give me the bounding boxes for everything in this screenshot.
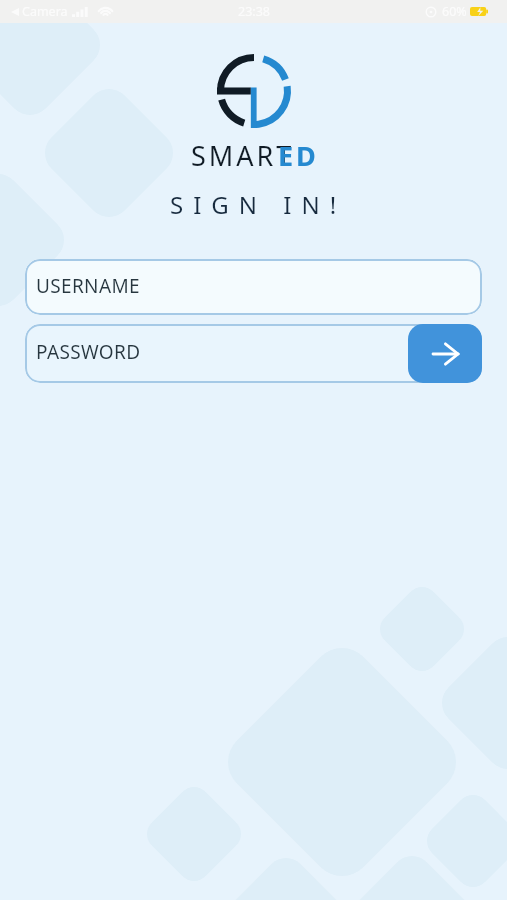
staticText: ED bbox=[278, 137, 319, 174]
button[interactable]: Sign in bbox=[408, 324, 482, 383]
button[interactable]: PASSWORD bbox=[25, 324, 482, 383]
staticText: 60% bbox=[442, 3, 467, 20]
button[interactable]: USERNAME bbox=[25, 259, 482, 315]
staticText: PASSWORD bbox=[36, 339, 141, 365]
staticText: SMART bbox=[191, 137, 295, 174]
staticText: Camera bbox=[22, 3, 68, 20]
staticText: SIGN IN! bbox=[170, 188, 347, 221]
staticText: 23:38 bbox=[238, 3, 270, 20]
staticText: USERNAME bbox=[36, 273, 140, 299]
